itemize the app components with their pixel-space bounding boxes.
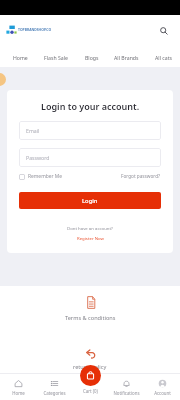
button[interactable]	[72, 374, 108, 400]
staticText: Register Now	[77, 235, 104, 241]
staticText: Blogs	[85, 54, 99, 61]
staticText: All Brands	[114, 54, 139, 61]
staticText: TOPBRANDSHOP.CO	[18, 27, 52, 32]
staticText: Email	[26, 127, 40, 134]
button[interactable]: Search	[156, 23, 172, 39]
button[interactable]: Terms & conditions	[65, 296, 116, 322]
staticText: Terms & conditions	[65, 314, 116, 322]
staticText: Password	[26, 154, 50, 161]
staticText: return policy	[73, 363, 107, 371]
staticText: All cats	[155, 54, 173, 61]
staticText: Dont have an account?	[67, 225, 113, 231]
button[interactable]: TOPBRANDSHOP.CO	[6, 24, 52, 35]
button[interactable]: return policy	[73, 349, 107, 371]
staticText: Account	[154, 390, 171, 396]
button[interactable]: Home	[0, 374, 36, 400]
button[interactable]: Flash Sale	[39, 49, 74, 65]
button[interactable]: Account	[144, 374, 180, 400]
button[interactable]: Categories	[36, 374, 72, 400]
button[interactable]: Login	[19, 192, 161, 209]
staticText: Remember Me	[28, 173, 62, 180]
staticText: Forgot password?	[121, 173, 161, 179]
staticText: Login	[82, 197, 98, 205]
staticText: Notifications	[113, 390, 140, 396]
button[interactable]: Notifications	[108, 374, 144, 400]
staticText: Categories	[43, 390, 66, 396]
button[interactable]: Remember Me	[19, 173, 62, 180]
button[interactable]: Register Now	[77, 235, 104, 241]
staticText: Flash Sale	[44, 54, 69, 61]
button[interactable]: Cart	[80, 365, 101, 386]
button[interactable]: All cats	[150, 49, 178, 65]
staticText: Login to your account.	[41, 100, 140, 112]
button[interactable]: All Brands	[109, 49, 144, 65]
button[interactable]: Email	[19, 121, 161, 140]
staticText: Home	[13, 54, 28, 61]
staticText: Cart (0)	[83, 388, 98, 394]
button[interactable]: Blogs	[80, 49, 104, 65]
button[interactable]: Password	[19, 148, 161, 167]
button[interactable]: Home	[8, 49, 33, 65]
staticText: Home	[12, 390, 25, 396]
button[interactable]: Forgot password?	[121, 173, 161, 179]
